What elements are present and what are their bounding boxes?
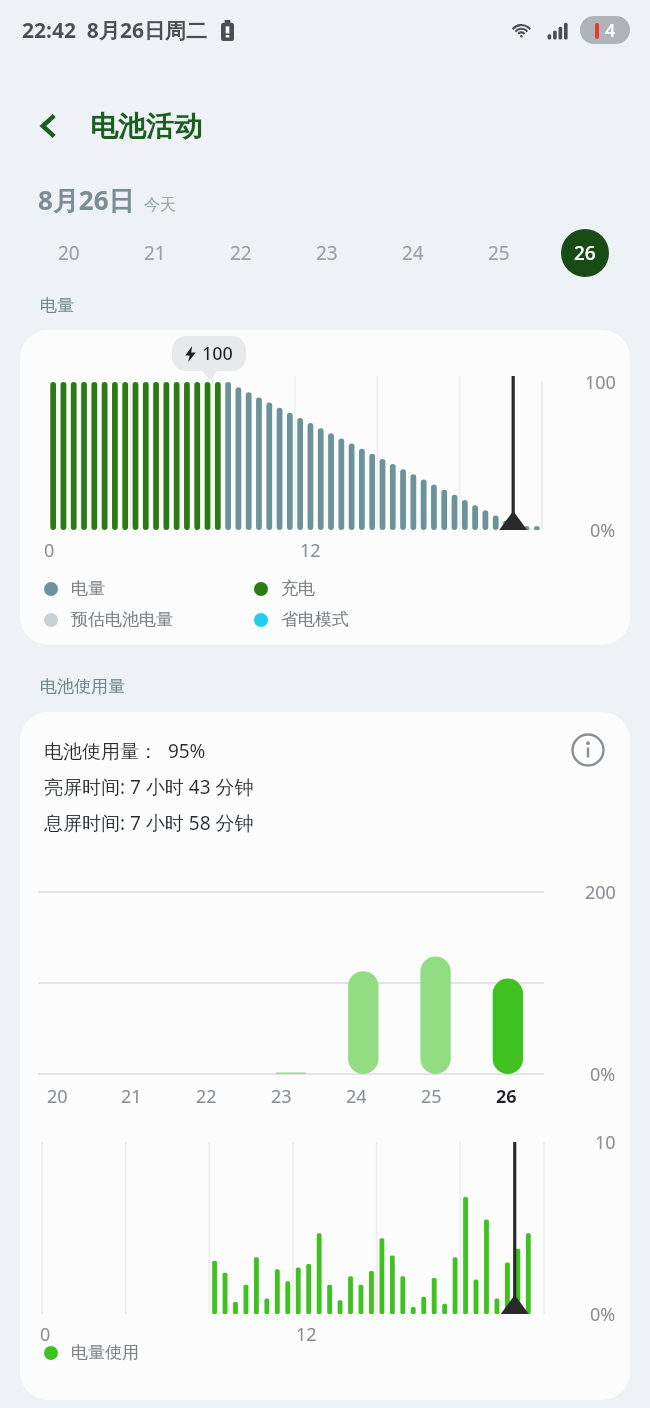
staticText: 0% xyxy=(590,1302,616,1327)
button[interactable]: 24 xyxy=(370,226,456,280)
staticText: 22 xyxy=(196,1084,217,1109)
staticText: 电池活动 xyxy=(90,109,202,144)
staticText: 电池使用量 xyxy=(40,676,125,697)
staticText: 21 xyxy=(144,240,166,266)
staticText: 21 xyxy=(121,1084,142,1109)
staticText: 23 xyxy=(271,1084,292,1109)
staticText: 10 xyxy=(595,1130,616,1155)
staticText: 4 xyxy=(605,18,616,43)
staticText: 100 xyxy=(585,370,616,395)
button[interactable]: 信息 xyxy=(566,728,610,772)
staticText: 26 xyxy=(574,240,596,266)
staticText: 22:42 8月26日周二 xyxy=(22,16,207,45)
staticText: 预估电池电量 xyxy=(71,609,173,630)
staticText: 息屏时间: 7 小时 58 分钟 xyxy=(44,810,254,836)
button[interactable]: 100 xyxy=(20,330,630,645)
button[interactable]: 20 xyxy=(26,226,112,280)
staticText: 0% xyxy=(590,518,616,543)
staticText: 24 xyxy=(346,1084,367,1109)
staticText: 20 xyxy=(58,240,80,266)
staticText: 100 xyxy=(202,341,233,366)
staticText: 电量 xyxy=(71,578,105,599)
staticText: 24 xyxy=(402,240,424,266)
button[interactable]: 22 xyxy=(198,226,284,280)
staticText: 8月26日 xyxy=(38,182,135,218)
button[interactable]: 返回 xyxy=(26,103,72,149)
staticText: 12 xyxy=(300,538,321,563)
staticText: 25 xyxy=(421,1084,442,1109)
button[interactable]: 26 xyxy=(542,226,628,280)
staticText: 23 xyxy=(316,240,338,266)
staticText: 22 xyxy=(230,240,252,266)
staticText: 0 xyxy=(40,1322,51,1347)
staticText: 电量 xyxy=(40,295,74,316)
staticText: 20 xyxy=(47,1084,68,1109)
staticText: 今天 xyxy=(144,195,176,215)
staticText: 0% xyxy=(590,1062,616,1087)
button[interactable]: 电池使用量： 95% xyxy=(20,712,630,1400)
staticText: 26 xyxy=(496,1084,517,1109)
staticText: 电量使用 xyxy=(71,1342,139,1363)
staticText: 12 xyxy=(296,1322,317,1347)
staticText: 省电模式 xyxy=(281,609,349,630)
staticText: 25 xyxy=(488,240,510,266)
button[interactable]: 21 xyxy=(112,226,198,280)
button[interactable]: 23 xyxy=(284,226,370,280)
staticText: 200 xyxy=(585,880,616,905)
staticText: 0 xyxy=(44,538,55,563)
staticText: 充电 xyxy=(281,578,315,599)
staticText: 亮屏时间: 7 小时 43 分钟 xyxy=(44,774,254,800)
button[interactable]: 25 xyxy=(456,226,542,280)
staticText: 电池使用量： 95% xyxy=(44,738,206,764)
